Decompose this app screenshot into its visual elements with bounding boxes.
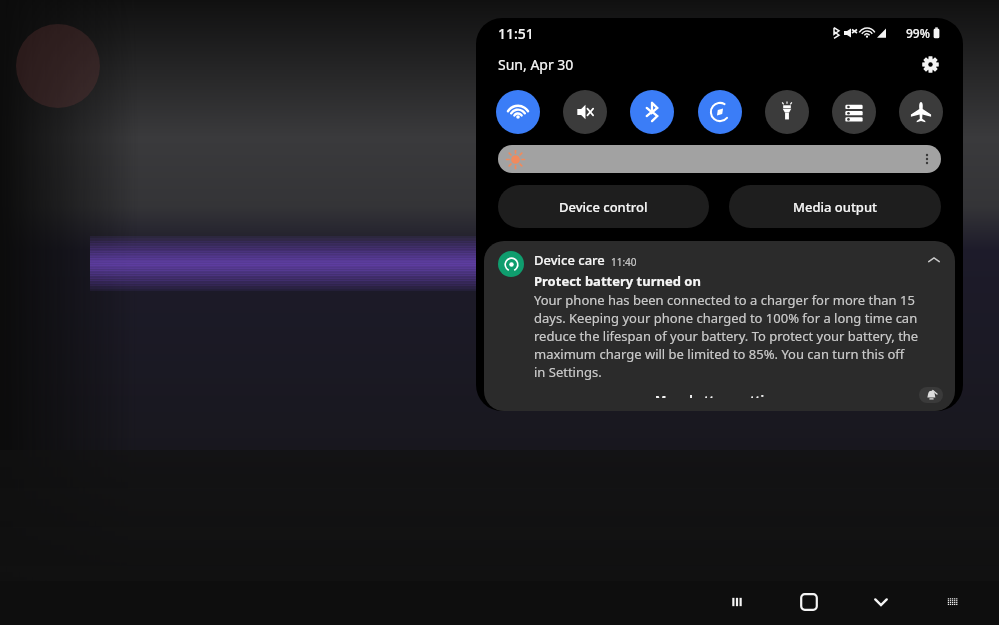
button[interactable]: Auto rotate [698,90,742,134]
button[interactable]: Back [845,587,917,617]
button[interactable]: Keyboard [917,587,989,617]
staticText: Device control [559,198,648,216]
button[interactable]: Sound off [563,90,607,134]
button[interactable]: Media output [729,185,941,228]
button[interactable]: Device control [498,185,709,228]
staticText: Sun, Apr 30 [498,55,574,74]
staticText: Device care [534,251,605,269]
button[interactable]: Brightness [498,145,941,173]
staticText: 11:40 [611,255,637,269]
staticText: Protect battery turned on [534,272,701,290]
button[interactable]: Collapse [925,251,943,269]
button[interactable]: More battery settings [641,387,800,403]
button[interactable]: Recents [701,587,773,617]
button[interactable]: Flashlight [765,90,809,134]
staticText: 99% [906,25,930,41]
button[interactable]: Data saver [832,90,876,134]
staticText: 11:51 [498,24,534,43]
button[interactable]: Wi-Fi [496,90,540,134]
button[interactable]: Home [773,587,845,617]
staticText: Your phone has been connected to a charg… [534,291,919,381]
button[interactable]: Flight mode [899,90,943,134]
button[interactable]: Device care [484,241,955,411]
staticText: Media output [793,198,878,216]
button[interactable]: Settings [917,51,943,77]
staticText: More battery settings [655,392,786,398]
button[interactable]: Bluetooth [630,90,674,134]
button[interactable]: Silence notification [919,387,943,403]
